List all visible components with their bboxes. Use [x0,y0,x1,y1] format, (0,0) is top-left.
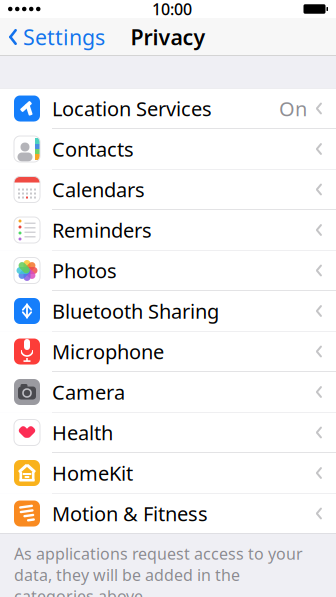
button[interactable]: Photos [0,250,336,291]
button[interactable]: Motion & Fitness [0,493,336,533]
button[interactable]: Health [0,412,336,453]
staticText: Reminders [52,217,152,243]
button[interactable]: Camera [0,372,336,412]
staticText: Photos [52,257,117,284]
button[interactable]: Reminders [0,210,336,250]
staticText: Settings [23,23,105,51]
button[interactable]: Location Services [0,88,336,129]
staticText: HomeKit [52,460,133,486]
staticText: Motion & Fitness [52,500,208,527]
staticText: As applications request access to your d… [14,543,303,597]
staticText: Camera [52,379,125,405]
staticText: On [279,95,307,122]
staticText: Microphone [52,338,164,365]
button[interactable]: Settings [0,17,105,57]
staticText: Privacy [130,23,205,51]
staticText: Calendars [52,176,145,203]
staticText: Location Services [52,95,212,122]
staticText: 10:00 [152,0,192,20]
button[interactable]: Microphone [0,331,336,372]
button[interactable]: Contacts [0,129,336,169]
staticText: Health [52,419,113,446]
button[interactable]: Calendars [0,169,336,210]
staticText: Bluetooth Sharing [52,298,219,324]
button[interactable]: HomeKit [0,453,336,493]
staticText: Contacts [52,136,134,162]
button[interactable]: Bluetooth Sharing [0,291,336,331]
